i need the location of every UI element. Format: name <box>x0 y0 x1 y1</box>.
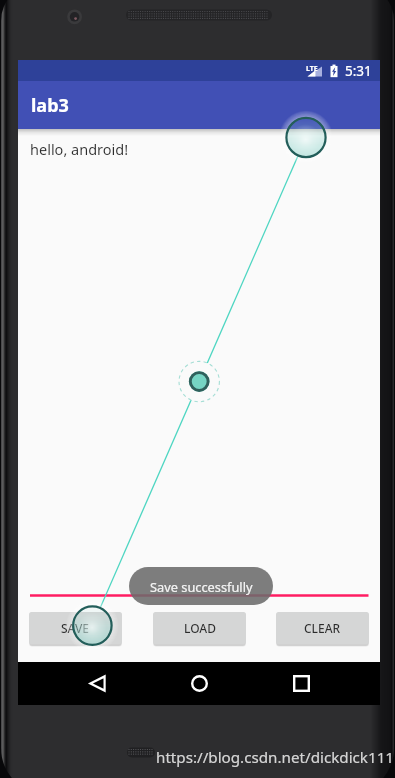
button[interactable]: LOAD <box>153 612 246 644</box>
staticText: CLEAR <box>304 620 341 636</box>
staticText: LOAD <box>184 620 216 636</box>
staticText: hello, android! <box>30 139 129 159</box>
button[interactable]: SAVE <box>29 612 122 644</box>
button[interactable]: Home <box>178 662 220 704</box>
button[interactable]: CLEAR <box>276 612 369 644</box>
button[interactable]: Back <box>76 662 118 704</box>
staticText: https://blog.csdn.net/dickdick111 <box>156 747 395 768</box>
staticText: Save successfully <box>150 578 253 595</box>
staticText: lab3 <box>31 93 69 118</box>
button[interactable]: Recents <box>280 662 322 704</box>
staticText: LTE <box>306 64 318 74</box>
staticText: SAVE <box>61 620 90 636</box>
staticText: 5:31 <box>345 62 372 80</box>
